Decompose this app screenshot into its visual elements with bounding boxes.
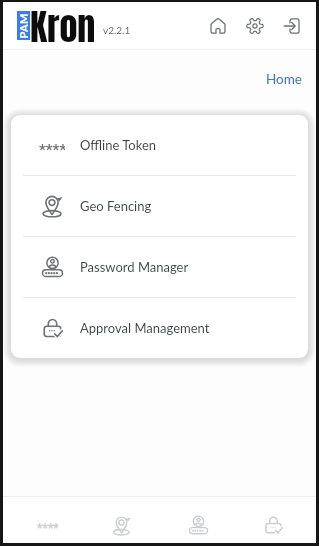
- button[interactable]: Home: [264, 68, 304, 90]
- staticText: Kron: [30, 0, 96, 47]
- button[interactable]: Geo Fencing: [11, 176, 308, 236]
- staticText: Geo Fencing: [80, 198, 152, 214]
- staticText: v2.2.1: [103, 24, 131, 36]
- staticText: Approval Management: [80, 320, 210, 336]
- button[interactable]: Password Manager: [160, 497, 238, 543]
- button[interactable]: Password Manager: [11, 237, 308, 297]
- staticText: ****: [39, 141, 65, 159]
- button[interactable]: Geo Fencing: [82, 497, 160, 543]
- button[interactable]: Home: [205, 13, 231, 39]
- button[interactable]: Settings: [242, 13, 268, 39]
- staticText: Home: [266, 71, 302, 87]
- staticText: ****: [37, 521, 59, 535]
- button[interactable]: ****: [11, 115, 308, 175]
- button[interactable]: Offline Token: [3, 497, 82, 543]
- button[interactable]: Approval Management: [238, 497, 316, 543]
- staticText: PAM: [16, 12, 29, 38]
- staticText: Offline Token: [80, 137, 157, 153]
- staticText: Password Manager: [80, 259, 189, 275]
- button[interactable]: Log out: [279, 13, 305, 39]
- button[interactable]: Approval Management: [11, 298, 308, 358]
